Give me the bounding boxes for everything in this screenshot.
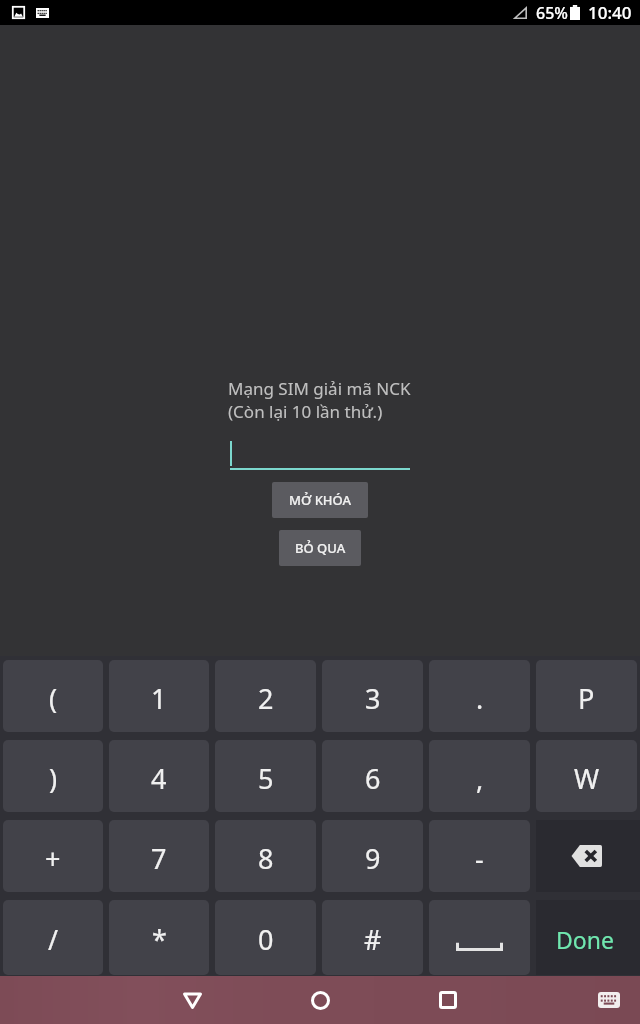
button[interactable]: Delete xyxy=(536,820,640,892)
staticText: 5 xyxy=(258,760,274,797)
staticText: # xyxy=(364,921,382,958)
button[interactable]: ( xyxy=(3,660,103,732)
staticText: MỞ KHÓA xyxy=(289,491,352,509)
staticText: BỎ QUA xyxy=(295,539,346,557)
other: Space xyxy=(456,940,503,951)
button[interactable]: P xyxy=(536,660,637,732)
button[interactable]: Recents xyxy=(412,976,484,1024)
button[interactable]: * xyxy=(109,900,209,975)
button[interactable]: , xyxy=(429,740,530,812)
button[interactable]: 5 xyxy=(215,740,316,812)
button[interactable]: 3 xyxy=(322,660,423,732)
button[interactable]: + xyxy=(3,820,103,892)
staticText: , xyxy=(476,760,484,797)
button[interactable]: Back xyxy=(156,976,228,1024)
button[interactable]: # xyxy=(322,900,423,975)
button[interactable]: . xyxy=(429,660,530,732)
staticText: + xyxy=(45,840,61,877)
staticText: ) xyxy=(49,760,58,797)
staticText: 9 xyxy=(365,840,381,877)
button[interactable]: 4 xyxy=(109,740,209,812)
button[interactable]: SIM unlock code entry field xyxy=(230,439,410,470)
button[interactable]: ) xyxy=(3,740,103,812)
button[interactable]: 9 xyxy=(322,820,423,892)
staticText: 6 xyxy=(365,760,381,797)
staticText: Done xyxy=(556,924,614,955)
button[interactable]: Home xyxy=(284,976,356,1024)
button[interactable]: 7 xyxy=(109,820,209,892)
button[interactable]: / xyxy=(3,900,103,975)
button[interactable]: 8 xyxy=(215,820,316,892)
staticText: P xyxy=(578,680,595,717)
staticText: (Còn lại 10 lần thử.) xyxy=(228,400,383,423)
staticText: W xyxy=(574,760,600,797)
button[interactable]: MỞ KHÓA xyxy=(272,482,368,518)
staticText: 3 xyxy=(365,680,381,717)
staticText: 7 xyxy=(151,840,167,877)
staticText: - xyxy=(475,840,484,877)
staticText: / xyxy=(48,921,59,958)
button[interactable]: W xyxy=(536,740,637,812)
button[interactable]: Switch keyboard xyxy=(578,976,640,1024)
button[interactable]: 6 xyxy=(322,740,423,812)
staticText: 2 xyxy=(258,680,274,717)
button[interactable]: 0 xyxy=(215,900,316,975)
other: Delete xyxy=(570,844,603,868)
staticText: Mạng SIM giải mã NCK xyxy=(228,377,411,400)
staticText: 10:40 xyxy=(588,1,632,24)
staticText: 4 xyxy=(151,760,167,797)
button[interactable]: - xyxy=(429,820,530,892)
staticText: . xyxy=(476,680,484,717)
button[interactable]: Done xyxy=(536,900,640,975)
staticText: * xyxy=(152,921,167,958)
staticText: 1 xyxy=(151,680,167,717)
button[interactable]: 2 xyxy=(215,660,316,732)
button[interactable]: Space xyxy=(429,900,530,975)
button[interactable]: BỎ QUA xyxy=(279,530,361,566)
staticText: 65% xyxy=(536,2,568,24)
button[interactable]: 1 xyxy=(109,660,209,732)
staticText: ( xyxy=(49,680,58,717)
staticText: 8 xyxy=(258,840,274,877)
staticText: 0 xyxy=(258,921,274,958)
